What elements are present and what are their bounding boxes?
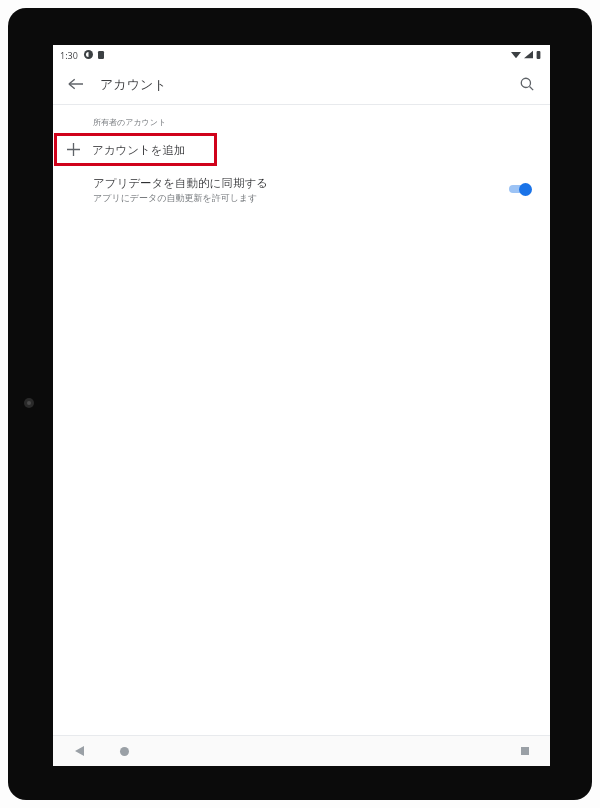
staticText: 1:30 — [60, 49, 78, 61]
staticText: アカウント — [100, 76, 167, 92]
staticText: アプリにデータの自動更新を許可します — [93, 192, 258, 203]
button[interactable]: Recent apps — [512, 738, 538, 764]
button[interactable]: Home — [111, 738, 137, 764]
staticText: アプリデータを自動的に同期する — [93, 176, 268, 190]
button[interactable]: Back — [59, 67, 93, 101]
button[interactable]: Back — [66, 738, 92, 764]
staticText: 所有者のアカウント — [93, 117, 167, 127]
button[interactable]: アカウントを追加 — [54, 133, 217, 166]
button[interactable]: Auto-sync app data toggle — [506, 179, 536, 199]
staticText: アカウントを追加 — [92, 143, 186, 157]
button[interactable]: アプリデータを自動的に同期する — [53, 166, 550, 212]
button[interactable]: Search — [510, 67, 544, 101]
